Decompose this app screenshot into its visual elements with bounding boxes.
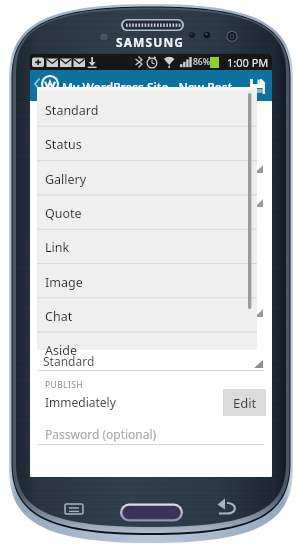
staticText: Link xyxy=(45,239,70,256)
staticText: My WordPress Site - New Post xyxy=(62,79,233,95)
staticText: Chat xyxy=(45,308,73,325)
button[interactable]: Save xyxy=(242,71,272,101)
staticText: Quote xyxy=(45,205,82,222)
staticText: Edit xyxy=(233,394,257,412)
staticText: Immediately xyxy=(45,394,116,410)
staticText: SAMSUNG xyxy=(116,34,185,50)
staticText: Password (optional) xyxy=(45,426,157,442)
button[interactable]: Standard xyxy=(37,92,257,126)
button[interactable]: Image xyxy=(37,264,257,298)
staticText: 1:00 PM xyxy=(227,55,269,70)
button[interactable]: Status xyxy=(37,126,257,160)
button[interactable]: Link xyxy=(37,229,257,263)
staticText: Standard xyxy=(43,353,95,369)
staticText: 86% xyxy=(193,56,210,68)
button[interactable]: My WordPress Site - New Post xyxy=(30,70,272,101)
staticText: Standard xyxy=(45,102,99,119)
button[interactable]: Chat xyxy=(37,298,257,332)
staticText: Aside xyxy=(45,342,77,359)
staticText: Gallery xyxy=(45,171,87,188)
button[interactable]: Aside xyxy=(37,332,257,366)
staticText: Image xyxy=(45,274,83,291)
button[interactable]: Quote xyxy=(37,195,257,229)
staticText: Status xyxy=(45,136,82,153)
staticText: PUBLISH xyxy=(45,379,83,391)
button[interactable]: Gallery xyxy=(37,161,257,195)
button[interactable]: Edit xyxy=(223,389,266,416)
